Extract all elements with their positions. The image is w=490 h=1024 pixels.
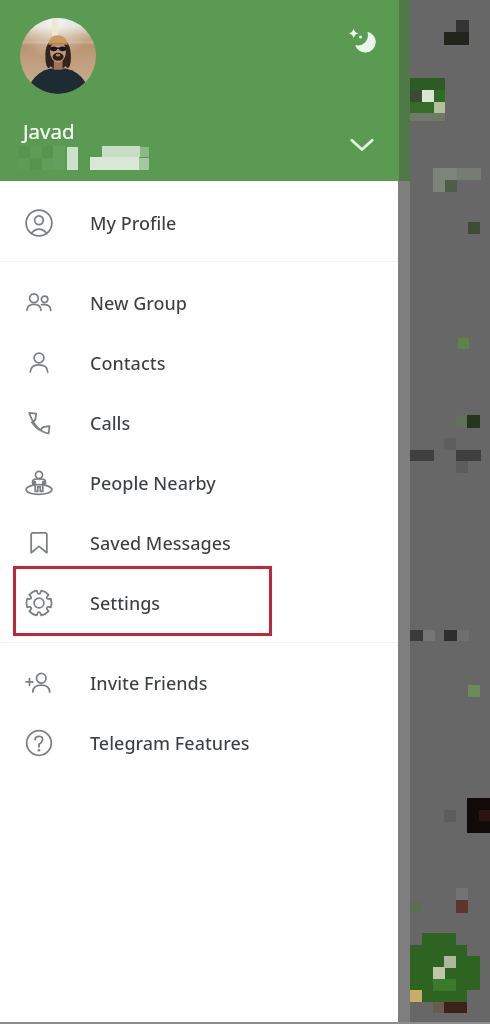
button[interactable]: Close navigation drawer	[398, 0, 490, 1024]
button[interactable]: Invite Friends	[0, 653, 398, 713]
button[interactable]: Night mode	[0, 0, 398, 181]
button[interactable]: New Group	[0, 273, 398, 333]
button[interactable]: Contacts	[0, 333, 398, 393]
button[interactable]: Telegram Features	[0, 713, 398, 773]
staticText: New Group	[90, 291, 187, 316]
staticText: People Nearby	[90, 471, 216, 496]
staticText: Calls	[90, 411, 131, 436]
button[interactable]: Expand accounts	[340, 123, 384, 167]
button[interactable]: Calls	[0, 393, 398, 453]
staticText: Javad	[23, 117, 75, 145]
staticText: Saved Messages	[90, 531, 231, 556]
button[interactable]: People Nearby	[0, 453, 398, 513]
staticText: Settings	[90, 591, 161, 616]
staticText: Contacts	[90, 351, 166, 376]
button[interactable]: Settings	[0, 573, 398, 633]
staticText: My Profile	[90, 211, 177, 236]
staticText: Telegram Features	[90, 731, 250, 756]
button[interactable]: Saved Messages	[0, 513, 398, 573]
staticText: Invite Friends	[90, 671, 208, 696]
button[interactable]: My Profile	[0, 193, 398, 253]
button[interactable]: Night mode	[340, 18, 384, 62]
